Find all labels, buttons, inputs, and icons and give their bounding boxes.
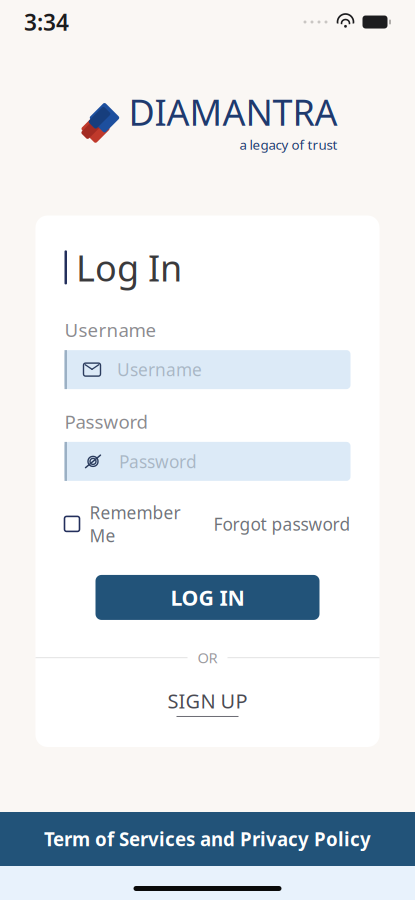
button[interactable]: Term of Services and Privacy Policy [0,812,415,866]
staticText: Username [64,317,156,342]
staticText: DIAMANTRA [128,88,337,136]
staticText: LOG IN [170,583,244,612]
staticText: a legacy of trust [239,136,337,153]
button[interactable]: Remember Me [64,501,180,547]
staticText: Forgot password [213,512,350,535]
staticText: SIGN UP [167,687,247,714]
staticText: Password [119,450,197,473]
staticText: Password [64,409,147,434]
button[interactable]: LOG IN [95,575,319,620]
staticText: Term of Services and Privacy Policy [44,827,371,851]
staticText: Username [117,358,202,381]
button[interactable]: Password [64,442,350,481]
button[interactable]: SIGN UP [167,687,247,717]
staticText: 3:34 [24,7,69,37]
staticText: OR [197,648,217,667]
staticText: Log In [76,243,182,291]
staticText: Remember Me [89,501,180,547]
button[interactable]: Username [64,350,350,389]
button[interactable]: Forgot password [213,512,350,535]
